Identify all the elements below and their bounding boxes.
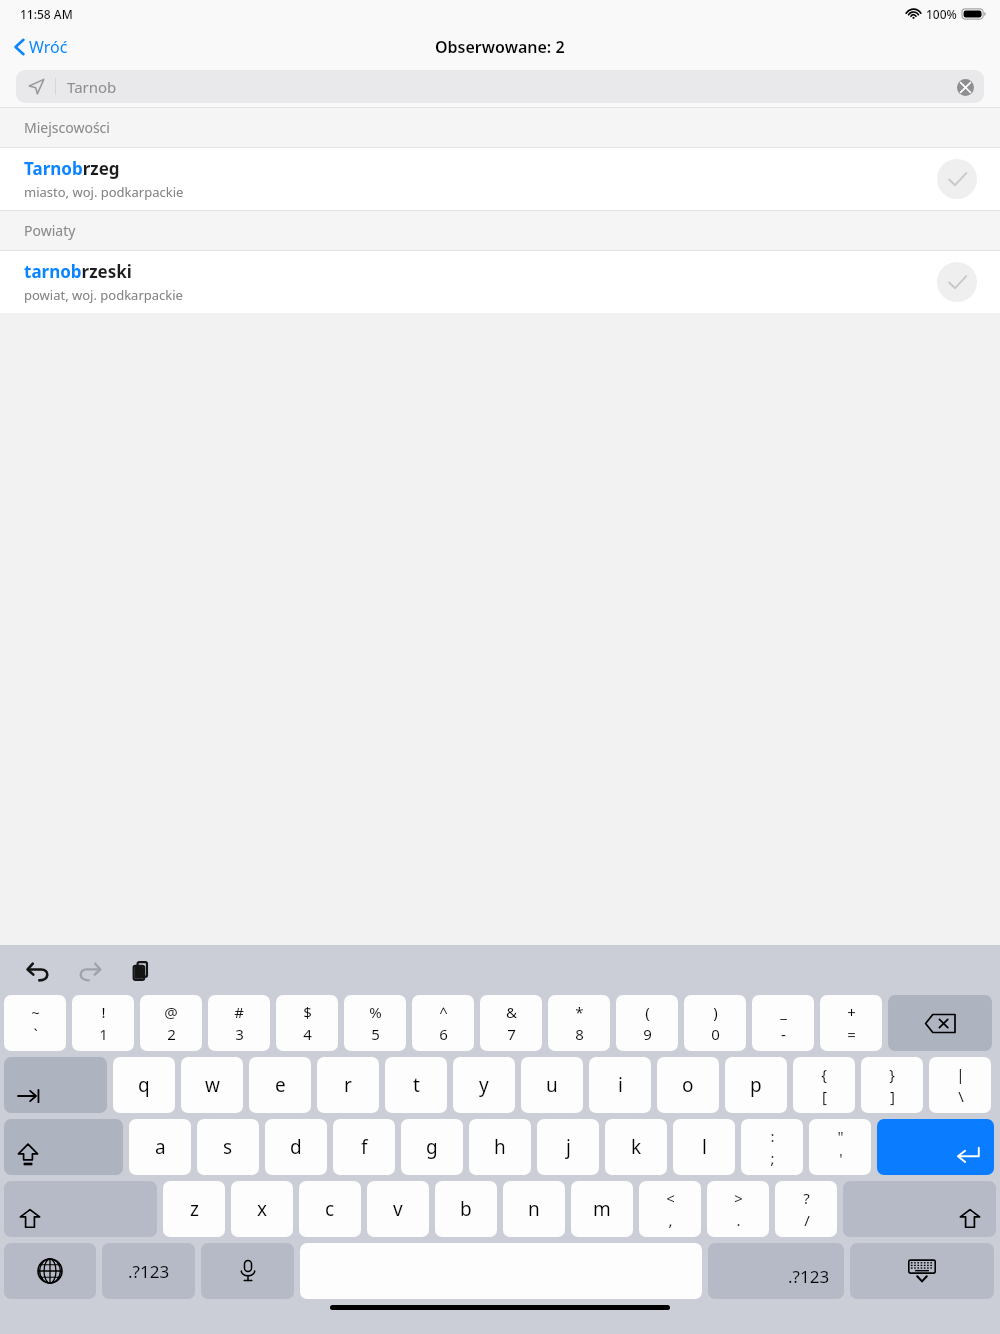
button[interactable]: Dictate — [201, 1243, 294, 1299]
staticText: k — [631, 1134, 642, 1160]
button[interactable]: g — [401, 1119, 463, 1175]
staticText: 5 — [371, 1024, 380, 1044]
button[interactable]: Copy — [124, 953, 160, 989]
staticText: ] — [890, 1086, 895, 1106]
button[interactable]: Clear search — [950, 72, 980, 102]
button[interactable]: o — [657, 1057, 719, 1113]
button[interactable]: Hide keyboard — [850, 1243, 994, 1299]
button[interactable]: } — [861, 1057, 923, 1113]
staticText: b — [460, 1196, 472, 1222]
button[interactable]: f — [333, 1119, 395, 1175]
button[interactable]: > — [707, 1181, 769, 1237]
staticText: > — [734, 1188, 743, 1208]
button[interactable]: Backspace — [888, 995, 992, 1051]
button[interactable]: Shift — [4, 1119, 123, 1175]
button[interactable]: w — [181, 1057, 243, 1113]
button[interactable]: < — [639, 1181, 701, 1237]
staticText: + — [847, 1002, 856, 1022]
button[interactable]: Shift — [4, 1181, 157, 1237]
button[interactable]: ! — [72, 995, 134, 1051]
button[interactable]: j — [537, 1119, 599, 1175]
staticText: ? — [803, 1188, 810, 1208]
staticText: n — [528, 1196, 540, 1222]
staticText: w — [205, 1072, 220, 1098]
button[interactable]: a — [129, 1119, 191, 1175]
button[interactable]: q — [113, 1057, 175, 1113]
staticText: q — [138, 1072, 150, 1098]
staticText: 1 — [99, 1024, 108, 1044]
button[interactable]: Add to observed — [937, 262, 977, 302]
button[interactable]: b — [435, 1181, 497, 1237]
button[interactable]: Return — [877, 1119, 994, 1175]
staticText: \ — [958, 1086, 964, 1106]
button[interactable]: k — [605, 1119, 667, 1175]
button[interactable]: c — [299, 1181, 361, 1237]
button[interactable]: Shift — [843, 1181, 996, 1237]
staticText: miasto, woj. podkarpackie — [24, 183, 184, 201]
button[interactable]: .?123 — [708, 1243, 844, 1299]
staticText: Tarnobrzeg — [24, 157, 120, 180]
button[interactable]: # — [208, 995, 270, 1051]
button[interactable]: " — [809, 1119, 871, 1175]
button[interactable]: Wróć — [0, 32, 78, 62]
button[interactable]: Tarnob — [16, 70, 984, 103]
staticText: } — [889, 1064, 895, 1084]
staticText: j — [566, 1134, 571, 1160]
staticText: y — [479, 1072, 489, 1098]
staticText: 11:58 AM — [20, 6, 73, 22]
button[interactable]: Add to observed — [937, 159, 977, 199]
button[interactable]: Undo — [20, 953, 56, 989]
button[interactable]: p — [725, 1057, 787, 1113]
button[interactable]: x — [231, 1181, 293, 1237]
staticText: @ — [164, 1002, 178, 1022]
button[interactable]: i — [589, 1057, 651, 1113]
button[interactable]: n — [503, 1181, 565, 1237]
button[interactable]: @ — [140, 995, 202, 1051]
button[interactable]: .?123 — [102, 1243, 195, 1299]
button[interactable]: ? — [775, 1181, 837, 1237]
button[interactable]: h — [469, 1119, 531, 1175]
button[interactable]: d — [265, 1119, 327, 1175]
button[interactable]: z — [163, 1181, 225, 1237]
button[interactable]: y — [453, 1057, 515, 1113]
staticText: 0 — [711, 1024, 720, 1044]
button[interactable]: r — [317, 1057, 379, 1113]
button[interactable]: Tarnobrzeg — [0, 148, 1000, 210]
staticText: x — [257, 1196, 268, 1222]
staticText: . — [736, 1210, 741, 1230]
button[interactable]: u — [521, 1057, 583, 1113]
button[interactable]: ~ — [4, 995, 66, 1051]
button[interactable]: t — [385, 1057, 447, 1113]
staticText: m — [593, 1196, 611, 1222]
button[interactable]: Tab — [4, 1057, 107, 1113]
button[interactable]: & — [480, 995, 542, 1051]
staticText: ' — [839, 1148, 843, 1168]
staticText: = — [847, 1024, 856, 1044]
button[interactable]: tarnobrzeski — [0, 251, 1000, 313]
button[interactable]: _ — [752, 995, 814, 1051]
staticText: t — [413, 1072, 420, 1098]
button[interactable]: v — [367, 1181, 429, 1237]
button[interactable]: ^ — [412, 995, 474, 1051]
button[interactable]: { — [793, 1057, 855, 1113]
staticText: v — [393, 1196, 403, 1222]
staticText: " — [837, 1126, 844, 1146]
button[interactable]: : — [741, 1119, 803, 1175]
staticText: z — [190, 1196, 199, 1222]
button[interactable]: ( — [616, 995, 678, 1051]
button[interactable]: e — [249, 1057, 311, 1113]
button[interactable]: l — [673, 1119, 735, 1175]
button[interactable]: + — [820, 995, 882, 1051]
staticText: $ — [303, 1002, 312, 1022]
button[interactable]: Change keyboard — [4, 1243, 96, 1299]
button[interactable]: % — [344, 995, 406, 1051]
button[interactable]: Redo — [72, 953, 108, 989]
button[interactable]: ) — [684, 995, 746, 1051]
button[interactable]: s — [197, 1119, 259, 1175]
button[interactable]: m — [571, 1181, 633, 1237]
staticText: < — [666, 1188, 675, 1208]
button[interactable]: $ — [276, 995, 338, 1051]
button[interactable]: * — [548, 995, 610, 1051]
button[interactable]: | — [929, 1057, 991, 1113]
